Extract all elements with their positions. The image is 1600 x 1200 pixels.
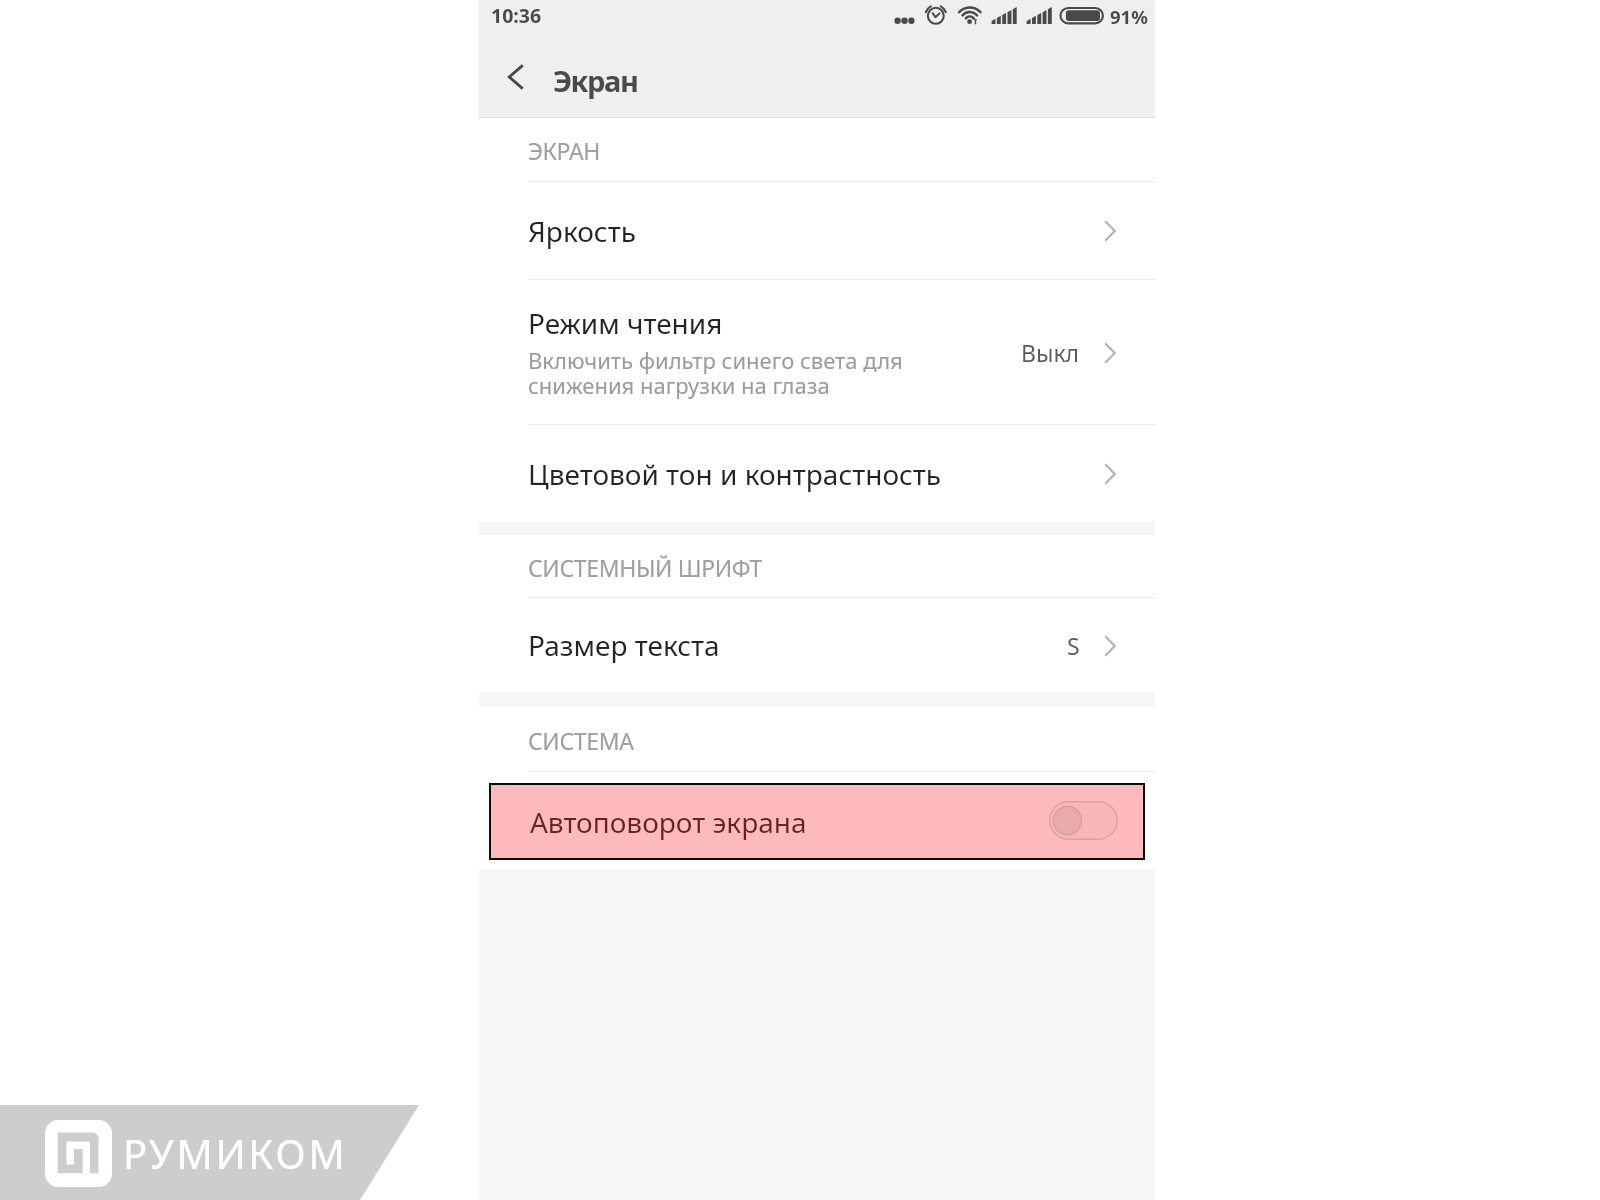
staticText: СИСТЕМА [528,725,634,756]
staticText: Экран [553,61,638,100]
staticText: Цветовой тон и контрастность [528,455,942,493]
staticText: СИСТЕМНЫЙ ШРИФТ [528,552,762,583]
staticText: 10:36 [491,2,542,29]
staticText: S [1067,630,1080,661]
button[interactable]: Автоповорот экрана [489,783,1145,860]
button[interactable]: Режим чтения [479,280,1155,424]
staticText: Выкл [1021,337,1080,368]
button[interactable]: Яркость [479,182,1155,279]
button[interactable]: Размер текста [479,598,1155,692]
staticText: ЭКРАН [528,135,601,166]
staticText: Автоповорот экрана [530,803,807,841]
button[interactable]: Цветовой тон и контрастность [479,425,1155,522]
staticText: Размер текста [528,626,720,664]
staticText: Яркость [528,212,636,250]
button[interactable]: Back [479,45,553,118]
staticText: Включить фильтр синего света для снижени… [528,345,928,401]
staticText: РУМИКОМ [123,1126,348,1180]
staticText: Режим чтения [528,304,723,342]
staticText: 91% [1110,4,1148,29]
